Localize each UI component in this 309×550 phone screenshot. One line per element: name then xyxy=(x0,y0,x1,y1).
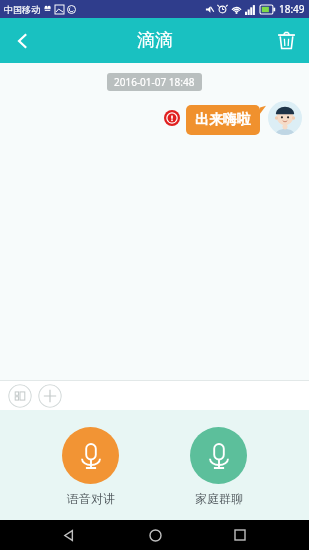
button[interactable]: Stickers xyxy=(8,384,32,408)
staticText: 中国移动 xyxy=(4,4,40,15)
button[interactable]: Delete xyxy=(264,18,309,63)
button[interactable]: 语音对讲 xyxy=(52,427,129,506)
staticText: 滴滴 xyxy=(137,29,173,52)
button[interactable]: 家庭群聊 xyxy=(180,427,257,506)
button[interactable]: Resend failed message xyxy=(164,110,180,126)
button[interactable]: Avatar xyxy=(268,101,302,135)
staticText: 2016-01-07 18:48 xyxy=(114,75,195,89)
staticText: 出来嗨啦 xyxy=(195,111,251,129)
button[interactable]: 出来嗨啦 xyxy=(186,105,260,135)
button[interactable]: More xyxy=(38,384,62,408)
button[interactable]: Back xyxy=(0,18,45,63)
staticText: 家庭群聊 xyxy=(195,491,243,506)
button[interactable]: Recents xyxy=(223,520,257,550)
staticText: 18:49 xyxy=(279,2,305,16)
button[interactable]: Home xyxy=(138,520,172,550)
button[interactable]: Back xyxy=(52,520,86,550)
staticText: 语音对讲 xyxy=(67,491,115,506)
